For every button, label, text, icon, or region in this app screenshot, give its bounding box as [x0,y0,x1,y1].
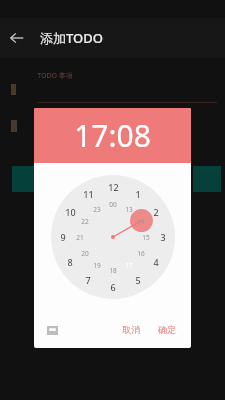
staticText: TODO 事项 [37,71,73,81]
staticText: 17 [125,261,133,270]
staticText: 18 [109,266,117,275]
button[interactable]: Back [0,21,34,55]
staticText: 2 [153,206,159,218]
staticText: 22 [81,217,89,226]
staticText: 20 [81,249,89,258]
staticText: 16 [137,249,145,258]
button[interactable]: 确定 [151,320,183,339]
staticText: 19 [93,261,101,270]
button[interactable]: 取消 [115,320,147,339]
staticText: 9 [60,231,66,243]
button[interactable]: Keyboard input [42,320,62,340]
staticText: 8 [67,256,73,268]
staticText: 00 [109,200,117,209]
staticText: 14 [137,217,145,226]
button[interactable]: 17:08 [34,108,191,163]
staticText: 取消 [122,324,140,335]
staticText: 7 [85,274,91,286]
staticText: 10 [65,206,76,218]
staticText: 21 [76,233,84,242]
staticText: 17:08 [74,115,151,156]
staticText: 15 [142,233,150,242]
staticText: 3 [160,231,166,243]
staticText: 12 [108,181,119,193]
staticText: 1 [135,188,141,200]
staticText: 4 [153,256,159,268]
staticText: 23 [93,205,101,214]
staticText: 13 [125,205,133,214]
staticText: 6 [110,281,116,293]
staticText: 确定 [158,324,176,335]
staticText: 5 [135,274,141,286]
staticText: 添加TODO [40,29,103,47]
staticText: 11 [83,188,94,200]
